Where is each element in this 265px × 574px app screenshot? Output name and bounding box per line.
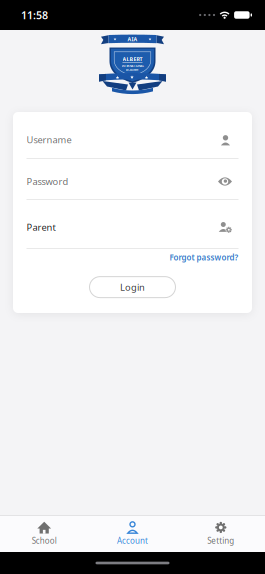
staticText: Forgot password?: [169, 252, 238, 263]
button[interactable]: School: [0, 515, 88, 552]
staticText: Parent: [26, 221, 55, 233]
staticText: 11:58: [21, 8, 48, 22]
button[interactable]: Account: [88, 515, 177, 552]
staticText: INTERNATIONAL: [121, 64, 143, 68]
staticText: Account: [117, 535, 148, 546]
staticText: AIA: [127, 36, 137, 43]
staticText: School: [32, 535, 57, 546]
staticText: Username: [26, 133, 71, 146]
button[interactable]: Parent: [26, 200, 238, 249]
staticText: ACADEMY: [126, 68, 139, 71]
button[interactable]: Forgot password?: [169, 252, 238, 263]
staticText: Setting: [207, 535, 234, 546]
staticText: Login: [120, 281, 145, 293]
button[interactable]: Password: [26, 159, 238, 200]
staticText: ALBERT: [122, 56, 142, 63]
button[interactable]: Setting: [177, 515, 265, 552]
button[interactable]: Login: [89, 277, 175, 298]
staticText: Password: [26, 175, 68, 188]
button[interactable]: Username: [26, 112, 238, 159]
